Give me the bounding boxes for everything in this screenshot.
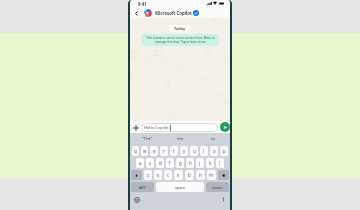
staticText: x (157, 172, 160, 178)
button[interactable]: w (141, 146, 148, 156)
staticText: v (177, 172, 180, 178)
staticText: e (153, 148, 156, 154)
button[interactable]: space (156, 182, 204, 192)
button[interactable]: Attach (130, 122, 141, 133)
staticText: Today (174, 26, 186, 31)
button[interactable]: “The” (130, 133, 164, 145)
button[interactable]: l (216, 158, 224, 168)
staticText: ABC (139, 185, 146, 190)
staticText: l (219, 160, 221, 166)
button[interactable]: Backspace (218, 170, 229, 180)
staticText: c (167, 172, 170, 178)
button[interactable]: r (160, 146, 168, 156)
button[interactable]: u (190, 146, 198, 156)
button[interactable]: s (146, 158, 154, 168)
button[interactable]: Hello Copilot (141, 123, 218, 132)
staticText: return (212, 185, 223, 190)
button[interactable]: i (200, 146, 208, 156)
button[interactable]: d (156, 158, 164, 168)
staticText: i (203, 148, 205, 154)
button[interactable]: z (144, 170, 152, 180)
staticText: the (177, 136, 184, 142)
button[interactable]: Back (130, 7, 230, 18)
button[interactable]: o (210, 146, 218, 156)
staticText: to (211, 136, 216, 142)
staticText: This business uses a secure service from… (146, 36, 215, 44)
staticText: a (139, 160, 142, 166)
staticText: o (213, 148, 216, 154)
button[interactable]: f (166, 158, 174, 168)
staticText: q (134, 148, 137, 154)
staticText: w (143, 148, 147, 154)
button[interactable]: n (196, 170, 205, 180)
button[interactable]: Emoji (133, 196, 140, 203)
button[interactable]: c (164, 170, 172, 180)
button[interactable]: m (207, 170, 216, 180)
button[interactable]: Dictate (220, 196, 227, 203)
staticText: n (199, 172, 202, 178)
staticText: d (159, 160, 162, 166)
button[interactable]: Send (220, 122, 230, 132)
staticText: Hello Copilot (144, 125, 169, 131)
button[interactable]: t (170, 146, 178, 156)
button[interactable]: Shift (131, 170, 142, 180)
button[interactable]: ABC (131, 182, 154, 192)
button[interactable]: k (206, 158, 214, 168)
staticText: g (179, 160, 182, 166)
staticText: u (193, 148, 196, 154)
button[interactable]: y (180, 146, 188, 156)
staticText: p (223, 148, 226, 154)
staticText: t (173, 148, 175, 154)
staticText: z (147, 172, 150, 178)
staticText: j (199, 160, 201, 166)
button[interactable]: x (154, 170, 162, 180)
button[interactable]: h (186, 158, 194, 168)
staticText: space (175, 185, 186, 190)
button[interactable]: p (220, 146, 228, 156)
staticText: m (209, 172, 214, 178)
staticText: s (149, 160, 152, 166)
button[interactable]: Back (132, 9, 140, 17)
staticText: 9:41 (138, 1, 147, 7)
staticText: h (189, 160, 192, 166)
button[interactable]: to (197, 133, 230, 145)
button[interactable]: a (136, 158, 144, 168)
button[interactable]: the (164, 133, 197, 145)
button[interactable]: b (185, 170, 194, 180)
staticText: Microsoft Copilot (155, 10, 192, 16)
button[interactable]: This business uses a secure service from… (142, 34, 219, 46)
button[interactable]: v (174, 170, 183, 180)
button[interactable]: q (132, 146, 139, 156)
staticText: f (169, 160, 171, 166)
button[interactable]: j (196, 158, 204, 168)
staticText: b (188, 172, 191, 178)
staticText: r (163, 148, 165, 154)
staticText: y (183, 148, 186, 154)
button[interactable]: return (206, 182, 229, 192)
button[interactable]: g (176, 158, 184, 168)
staticText: “The” (142, 136, 153, 142)
staticText: k (209, 160, 212, 166)
button[interactable]: e (150, 146, 158, 156)
